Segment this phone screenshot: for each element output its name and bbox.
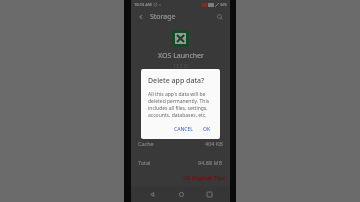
button[interactable]: Recent apps bbox=[202, 187, 216, 201]
staticText: SK Digital Tips bbox=[183, 174, 226, 182]
button[interactable]: Total bbox=[131, 157, 230, 167]
button[interactable]: Back bbox=[135, 11, 147, 23]
staticText: 34% bbox=[220, 2, 227, 7]
staticText: 10:13 AM bbox=[134, 2, 152, 7]
button[interactable]: Cache bbox=[131, 138, 230, 148]
staticText: 94.88 MB bbox=[198, 159, 223, 166]
button[interactable]: OK bbox=[200, 124, 214, 135]
staticText: 13.3.31 bbox=[173, 63, 189, 69]
button[interactable]: CANCEL bbox=[171, 124, 196, 135]
staticText: Storage bbox=[150, 12, 176, 22]
button[interactable]: Search bbox=[214, 11, 226, 23]
staticText: OK bbox=[203, 126, 211, 133]
button[interactable]: Home bbox=[174, 187, 188, 201]
staticText: XOS Launcher bbox=[158, 51, 204, 61]
staticText: Total bbox=[138, 159, 151, 166]
staticText: Cache bbox=[138, 140, 154, 147]
staticText: 404 KB bbox=[205, 140, 223, 147]
staticText: Delete app data? bbox=[148, 76, 205, 86]
button[interactable]: Back bbox=[145, 187, 159, 201]
staticText: CANCEL bbox=[174, 126, 193, 133]
staticText: All this app's data will be deleted perm… bbox=[148, 91, 214, 119]
